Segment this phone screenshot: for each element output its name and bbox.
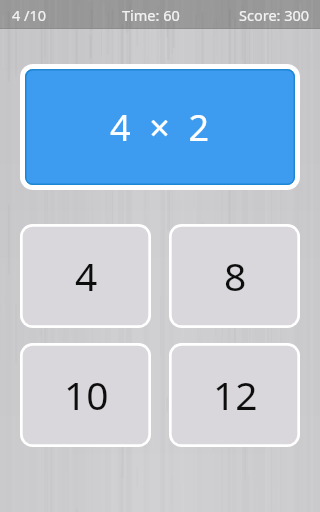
button[interactable]: 4 bbox=[20, 224, 151, 328]
staticText: 4 bbox=[75, 249, 98, 302]
staticText: Time: 60 bbox=[122, 5, 180, 25]
button[interactable]: Question 4 times 2 bbox=[20, 64, 300, 190]
staticText: 4 /10 bbox=[12, 5, 47, 25]
staticText: 8 bbox=[224, 249, 247, 302]
button[interactable]: 10 bbox=[20, 343, 151, 447]
staticText: 12 bbox=[213, 368, 258, 421]
staticText: Score: 300 bbox=[239, 5, 310, 25]
button[interactable]: 8 bbox=[169, 224, 300, 328]
staticText: 10 bbox=[64, 368, 109, 421]
staticText: 4 × 2 bbox=[110, 103, 210, 152]
button[interactable]: 12 bbox=[169, 343, 300, 447]
